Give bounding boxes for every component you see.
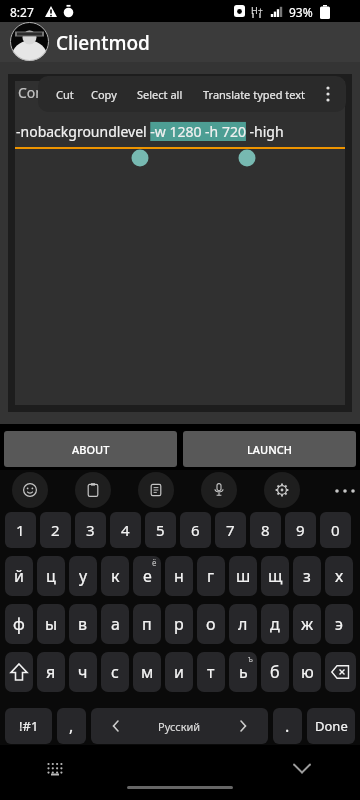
staticText: е bbox=[143, 565, 152, 587]
button[interactable]: о bbox=[197, 604, 225, 644]
button[interactable] bbox=[264, 472, 300, 508]
staticText: !#1 bbox=[19, 717, 39, 735]
staticText: с bbox=[111, 661, 119, 683]
button[interactable] bbox=[47, 762, 63, 776]
button[interactable] bbox=[75, 472, 111, 508]
button[interactable] bbox=[325, 652, 356, 692]
button[interactable]: г bbox=[197, 556, 225, 596]
button[interactable]: б bbox=[261, 652, 289, 692]
button[interactable]: Translate typed text bbox=[203, 76, 306, 112]
button[interactable]: Русский bbox=[91, 708, 268, 744]
button[interactable] bbox=[201, 472, 237, 508]
staticText: -nobackgroundlevel -w 1280 -h 720 -high bbox=[16, 122, 284, 141]
button[interactable]: ы bbox=[37, 604, 65, 644]
button[interactable]: и bbox=[165, 652, 193, 692]
button[interactable]: !#1 bbox=[5, 708, 52, 744]
staticText: т bbox=[207, 661, 215, 683]
staticText: 0 bbox=[331, 520, 340, 540]
button[interactable]: LAUNCH bbox=[183, 431, 356, 467]
button[interactable]: л bbox=[229, 604, 257, 644]
staticText: 9 bbox=[296, 520, 305, 540]
button[interactable]: э bbox=[325, 604, 353, 644]
button[interactable]: . bbox=[273, 708, 302, 744]
staticText: Translate typed text bbox=[203, 87, 306, 102]
button[interactable]: р bbox=[165, 604, 193, 644]
staticText: ё bbox=[152, 557, 157, 568]
staticText: э bbox=[335, 613, 343, 635]
staticText: и bbox=[174, 661, 184, 683]
button[interactable]: п bbox=[133, 604, 161, 644]
staticText: Clientmod bbox=[56, 30, 150, 56]
button[interactable]: е bbox=[133, 556, 161, 596]
button[interactable] bbox=[138, 472, 174, 508]
button[interactable]: ю bbox=[293, 652, 321, 692]
button[interactable]: 3 bbox=[75, 512, 106, 548]
staticText: з bbox=[303, 565, 311, 587]
button[interactable]: Done bbox=[307, 708, 355, 744]
button[interactable]: 0 bbox=[320, 512, 351, 548]
staticText: 6 bbox=[191, 520, 200, 540]
staticText: 8 bbox=[261, 520, 270, 540]
staticText: ч bbox=[78, 661, 88, 683]
staticText: н bbox=[174, 565, 184, 587]
button[interactable]: я bbox=[37, 652, 65, 692]
button[interactable]: а bbox=[101, 604, 129, 644]
button[interactable]: к bbox=[101, 556, 129, 596]
staticText: 8:27 bbox=[10, 4, 34, 20]
staticText: м bbox=[141, 661, 154, 683]
button[interactable]: ц bbox=[37, 556, 65, 596]
button[interactable]: 4 bbox=[110, 512, 141, 548]
button[interactable]: х bbox=[325, 556, 353, 596]
button[interactable]: м bbox=[133, 652, 161, 692]
button[interactable]: ш bbox=[229, 556, 257, 596]
staticText: 93% bbox=[289, 4, 313, 20]
button[interactable]: д bbox=[261, 604, 289, 644]
button[interactable]: в bbox=[69, 604, 97, 644]
button[interactable]: 6 bbox=[180, 512, 211, 548]
button[interactable]: с bbox=[101, 652, 129, 692]
staticText: ъ bbox=[248, 653, 253, 664]
staticText: ы bbox=[45, 613, 58, 635]
button[interactable]: ж bbox=[293, 604, 321, 644]
staticText: л bbox=[238, 613, 248, 635]
staticText: LAUNCH bbox=[247, 442, 292, 457]
staticText: Copy bbox=[91, 87, 117, 102]
button[interactable]: т bbox=[197, 652, 225, 692]
staticText: ABOUT bbox=[72, 442, 110, 457]
button[interactable]: 8 bbox=[250, 512, 281, 548]
button[interactable]: й bbox=[5, 556, 33, 596]
button[interactable] bbox=[293, 763, 311, 774]
button[interactable]: ь bbox=[229, 652, 257, 692]
button[interactable]: ABOUT bbox=[4, 431, 177, 467]
button[interactable]: з bbox=[293, 556, 321, 596]
button[interactable]: Select all bbox=[137, 76, 183, 112]
staticText: ю bbox=[301, 661, 314, 683]
staticText: щ bbox=[268, 565, 283, 587]
staticText: 2 bbox=[51, 520, 60, 540]
staticText: к bbox=[111, 565, 120, 587]
button[interactable] bbox=[334, 488, 356, 494]
staticText: Cut bbox=[56, 87, 74, 102]
button[interactable]: 1 bbox=[5, 512, 36, 548]
button[interactable] bbox=[5, 652, 33, 692]
staticText: я bbox=[46, 661, 56, 683]
button[interactable]: 9 bbox=[285, 512, 316, 548]
button[interactable]: Cut bbox=[56, 76, 74, 112]
button[interactable]: ф bbox=[5, 604, 33, 644]
staticText: ф bbox=[13, 613, 25, 635]
button[interactable]: Copy bbox=[91, 76, 117, 112]
button[interactable]: ч bbox=[69, 652, 97, 692]
button[interactable]: , bbox=[57, 708, 86, 744]
button[interactable]: 2 bbox=[40, 512, 71, 548]
button[interactable]: у bbox=[69, 556, 97, 596]
button[interactable]: 7 bbox=[215, 512, 246, 548]
staticText: г bbox=[207, 565, 215, 587]
staticText: у bbox=[79, 565, 88, 587]
button[interactable]: 5 bbox=[145, 512, 176, 548]
staticText: . bbox=[285, 715, 290, 737]
button[interactable]: н bbox=[165, 556, 193, 596]
staticText: п bbox=[142, 613, 152, 635]
staticText: в bbox=[78, 613, 88, 635]
button[interactable]: щ bbox=[261, 556, 289, 596]
button[interactable] bbox=[12, 472, 48, 508]
